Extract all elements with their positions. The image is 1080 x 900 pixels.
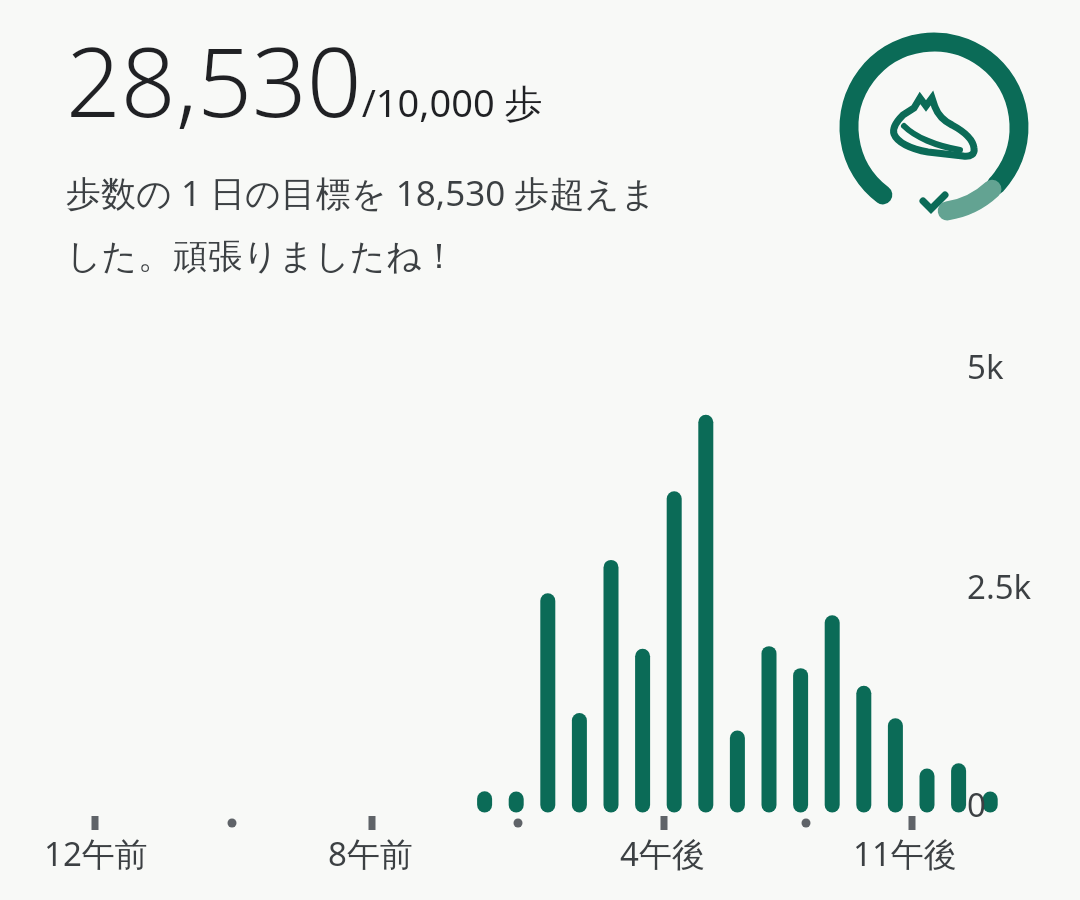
staticText: 12午前 xyxy=(44,831,148,876)
staticText: 歩数の 1 日の目標を 18,530 歩超えま した。頑張りましたね！ xyxy=(66,169,657,279)
staticText: 0 xyxy=(967,782,986,827)
button[interactable]: Hourly step chart xyxy=(0,0,1080,900)
staticText: 8午前 xyxy=(328,831,413,876)
button[interactable]: Step goal progress ring xyxy=(836,20,1032,234)
button[interactable]: 28,530/10,000 歩 xyxy=(66,14,796,279)
staticText: 4午後 xyxy=(620,831,705,876)
staticText: 11午後 xyxy=(853,831,957,876)
staticText: 5k xyxy=(967,344,1004,389)
staticText: 28,530/10,000 歩 xyxy=(66,14,543,145)
staticText: 2.5k xyxy=(967,564,1032,609)
